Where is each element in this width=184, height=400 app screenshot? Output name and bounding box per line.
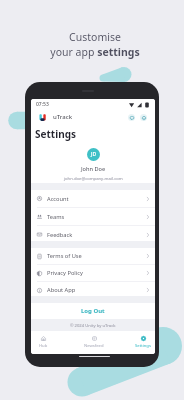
staticText: John Doe (81, 165, 106, 173)
staticText: Account (47, 195, 69, 203)
staticText: Settings (135, 343, 151, 349)
staticText: Terms of Use (47, 252, 82, 260)
staticText: Privacy Policy (47, 269, 83, 277)
button[interactable]: Notifications (140, 114, 147, 121)
staticText: JD (91, 151, 97, 158)
staticText: Customise (69, 30, 121, 44)
staticText: © 2024 Unity by uTrack (70, 323, 116, 329)
button[interactable]: Hub (31, 331, 73, 354)
button[interactable]: Account (31, 190, 155, 207)
button[interactable]: Messages (128, 114, 135, 121)
staticText: 07:53 (36, 101, 49, 108)
staticText: Teams (47, 213, 65, 221)
button[interactable]: Terms of Use (31, 248, 155, 264)
button[interactable]: Teams (31, 208, 155, 225)
staticText: About App (47, 286, 76, 294)
staticText: Hub (39, 343, 48, 349)
button[interactable]: Feedback (31, 226, 155, 243)
button[interactable]: Privacy Policy (31, 265, 155, 281)
staticText: uTrack (53, 113, 72, 121)
button[interactable]: About App (31, 282, 155, 298)
staticText: Settings (35, 127, 76, 141)
staticText: john.doe@company-mail.com (64, 176, 123, 182)
button[interactable]: Log Out (31, 303, 155, 319)
staticText: Newsfeed (84, 343, 104, 349)
staticText: your app settings (50, 45, 140, 59)
button[interactable]: Newsfeed (73, 331, 114, 354)
button[interactable]: Settings (114, 331, 155, 354)
staticText: Feedback (47, 231, 73, 239)
staticText: Log Out (81, 307, 105, 315)
